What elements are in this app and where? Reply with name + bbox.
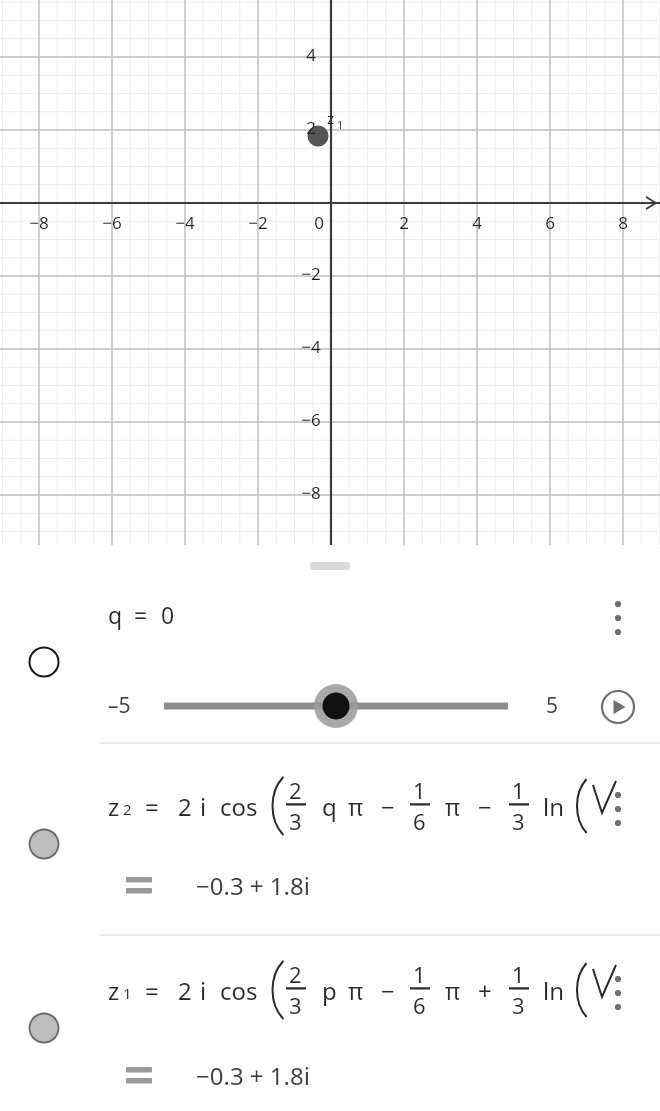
- staticText: 1: [413, 959, 426, 989]
- staticText: z: [327, 108, 335, 128]
- staticText: −4: [301, 335, 321, 357]
- staticText: 2: [123, 799, 132, 819]
- staticText: –5: [108, 691, 131, 720]
- staticText: −: [478, 790, 492, 823]
- staticText: −6: [102, 211, 122, 233]
- button[interactable]: Play animation: [600, 689, 636, 725]
- staticText: −: [381, 974, 395, 1007]
- staticText: 4: [306, 43, 316, 65]
- staticText: −6: [301, 408, 321, 430]
- button[interactable]: Slider for q: [150, 683, 522, 729]
- staticText: −4: [175, 211, 195, 233]
- staticText: π: [445, 791, 461, 822]
- staticText: 1: [123, 983, 132, 1003]
- button[interactable]: −0.3 + 1.8i: [110, 863, 410, 905]
- staticText: 6: [413, 806, 426, 836]
- staticText: i: [200, 974, 207, 1007]
- staticText: 0: [314, 211, 324, 233]
- staticText: p: [322, 974, 337, 1007]
- staticText: −8: [301, 481, 321, 503]
- staticText: 0: [161, 599, 175, 630]
- staticText: 1: [413, 775, 426, 805]
- staticText: 3: [289, 806, 302, 836]
- staticText: z: [108, 790, 120, 823]
- staticText: π: [445, 975, 461, 1006]
- staticText: 1: [337, 117, 344, 132]
- staticText: 2: [306, 116, 316, 138]
- staticText: 2: [178, 974, 192, 1007]
- staticText: 6: [545, 211, 555, 233]
- staticText: 2: [178, 790, 192, 823]
- button[interactable]: More options for z1: [602, 966, 634, 1010]
- staticText: 2: [289, 959, 302, 989]
- staticText: cos: [220, 974, 258, 1007]
- button[interactable]: z: [100, 957, 580, 1021]
- staticText: +: [478, 974, 492, 1007]
- staticText: −0.3 + 1.8i: [196, 1059, 310, 1092]
- staticText: 3: [512, 990, 525, 1020]
- staticText: z: [108, 974, 120, 1007]
- staticText: =: [134, 599, 148, 630]
- staticText: 2: [399, 211, 409, 233]
- staticText: 5: [546, 691, 559, 720]
- staticText: −0.3 + 1.8i: [196, 869, 310, 902]
- staticText: 4: [472, 211, 482, 233]
- staticText: 8: [618, 211, 628, 233]
- staticText: −: [381, 790, 395, 823]
- staticText: =: [145, 974, 159, 1007]
- staticText: 1: [512, 775, 525, 805]
- staticText: cos: [220, 790, 258, 823]
- button[interactable]: q: [108, 599, 228, 633]
- staticText: −8: [29, 211, 49, 233]
- staticText: 2: [289, 775, 302, 805]
- staticText: 6: [413, 990, 426, 1020]
- staticText: 1: [512, 959, 525, 989]
- staticText: i: [200, 790, 207, 823]
- staticText: ln: [543, 974, 565, 1007]
- button[interactable]: z: [100, 773, 580, 837]
- button[interactable]: More options for q: [602, 591, 634, 635]
- staticText: =: [145, 790, 159, 823]
- staticText: π: [348, 791, 364, 822]
- button[interactable]: Toggle z1: [28, 1012, 60, 1044]
- staticText: 3: [512, 806, 525, 836]
- staticText: π: [348, 975, 364, 1006]
- staticText: −2: [301, 262, 321, 284]
- staticText: q: [108, 599, 123, 630]
- button[interactable]: Toggle z2: [28, 828, 60, 860]
- staticText: q: [322, 790, 337, 823]
- staticText: 3: [289, 990, 302, 1020]
- staticText: −2: [248, 211, 268, 233]
- button[interactable]: Toggle q: [28, 646, 60, 678]
- staticText: ln: [543, 790, 565, 823]
- button[interactable]: More options for z2: [602, 782, 634, 826]
- button[interactable]: −0.3 + 1.8i: [110, 1053, 410, 1095]
